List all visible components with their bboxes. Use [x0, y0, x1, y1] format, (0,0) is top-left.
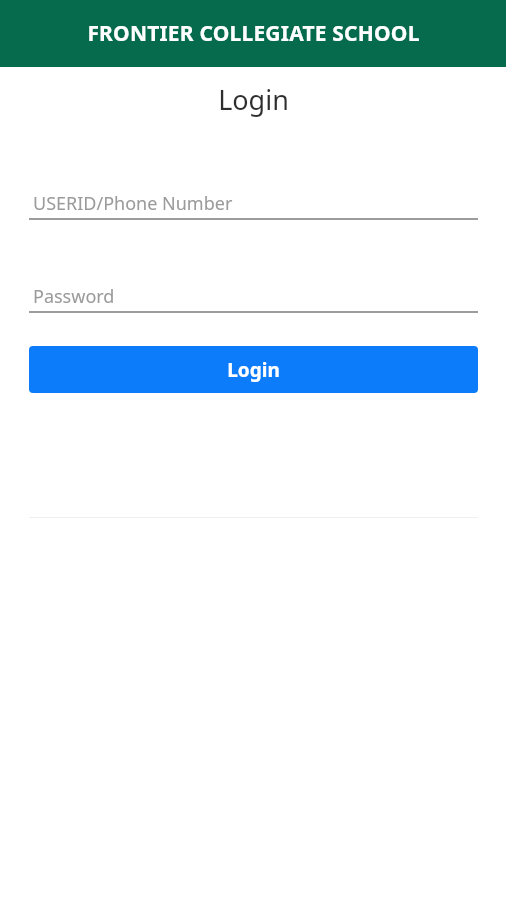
staticText: Password — [33, 284, 115, 309]
button[interactable]: Login — [29, 346, 478, 393]
staticText: USERID/Phone Number — [33, 191, 233, 216]
staticText: Login — [227, 357, 280, 383]
button[interactable]: USERID/Phone Number — [29, 188, 478, 220]
staticText: FRONTIER COLLEGIATE SCHOOL — [87, 19, 420, 48]
staticText: Login — [218, 81, 289, 118]
button[interactable]: Password — [29, 281, 478, 313]
